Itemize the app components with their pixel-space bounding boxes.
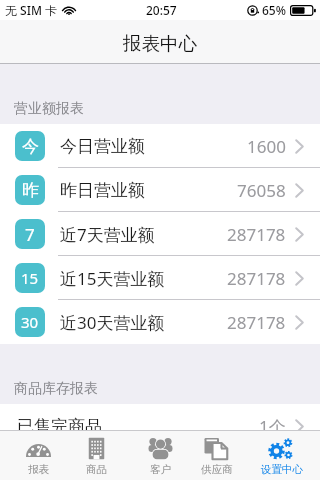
other: 报表 [26,436,51,461]
staticText: 7 [25,223,35,246]
staticText: 287178 [227,223,286,246]
staticText: 65% [262,2,286,18]
staticText: 287178 [227,311,286,334]
staticText: 近7天营业额 [60,223,155,246]
button[interactable]: 30 [0,300,320,344]
other: 商品 [84,436,109,461]
staticText: 客户 [150,463,171,476]
staticText: 20:57 [146,2,177,18]
staticText: 供应商 [201,463,233,476]
other: 设置中心 [269,436,294,461]
staticText: 设置中心 [261,463,303,476]
other: 供应商 [204,436,229,461]
staticText: 昨 [22,180,39,201]
staticText: 近15天营业额 [60,267,165,290]
button[interactable]: 客户 [129,431,192,480]
button[interactable]: 今 [0,124,320,168]
button[interactable]: 设置中心 [250,431,313,480]
staticText: 15 [21,268,39,288]
staticText: 昨日营业额 [60,180,145,201]
staticText: 营业额报表 [14,100,84,118]
button[interactable]: 昨 [0,168,320,212]
other: 客户 [148,436,173,461]
staticText: 报表中心 [123,32,197,55]
staticText: 1600 [247,135,286,158]
staticText: 今 [22,136,39,157]
button[interactable]: 报表 [7,431,70,480]
staticText: 近30天营业额 [60,311,165,334]
button[interactable]: 已售完商品 [0,404,320,430]
button[interactable]: 15 [0,256,320,300]
button[interactable]: 供应商 [185,431,248,480]
staticText: 今日营业额 [60,136,145,157]
button[interactable]: 商品 [65,431,128,480]
staticText: 76058 [237,179,286,202]
staticText: 已售完商品 [17,416,102,430]
staticText: 30 [21,312,39,332]
staticText: 287178 [227,267,286,290]
staticText: 商品库存报表 [14,380,98,398]
staticText: 1个 [259,415,286,430]
staticText: 无 SIM 卡 [5,2,58,18]
button[interactable]: 7 [0,212,320,256]
staticText: 报表 [28,463,49,476]
staticText: 商品 [86,463,107,476]
